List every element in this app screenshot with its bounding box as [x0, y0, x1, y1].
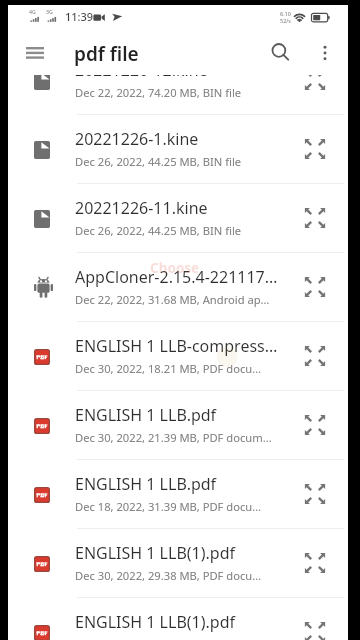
staticText: 20221226-12.kine: [75, 75, 208, 81]
staticText: AppCloner-2.15.4-221117…: [75, 266, 278, 288]
staticText: ENGLISH 1 LLB(1).pdf: [75, 611, 236, 633]
staticText: Choose: [150, 259, 200, 277]
staticText: Dec 30, 2022, 18.21 MB, PDF docu…: [75, 361, 262, 376]
button[interactable]: Expand: [287, 183, 342, 252]
staticText: pdf file: [74, 41, 139, 67]
button[interactable]: 20221226-11.kine: [8, 184, 348, 253]
button[interactable]: Expand: [287, 75, 342, 114]
button[interactable]: 20221226-1.kine: [8, 115, 348, 184]
button[interactable]: Search: [264, 37, 298, 69]
staticText: Dec 22, 2022, 74.20 MB, BIN file: [75, 85, 242, 100]
staticText: 3G: [46, 8, 53, 15]
staticText: 4G: [29, 8, 36, 15]
staticText: Dec 22, 2022, 31.68 MB, Android ap…: [75, 292, 270, 307]
button[interactable]: Expand: [287, 459, 342, 528]
button[interactable]: ENGLISH 1 LLB-compress…: [8, 322, 348, 391]
button[interactable]: Expand: [287, 252, 342, 321]
button[interactable]: Expand: [287, 390, 342, 459]
button[interactable]: Expand: [287, 321, 342, 390]
staticText: Dec 30, 2022, 29.38 MB, PDF docu…: [75, 568, 262, 583]
staticText: Dec 30, 2022, 21.39 MB, PDF docum…: [75, 430, 272, 445]
staticText: 6.10: [280, 10, 291, 17]
button[interactable]: ENGLISH 1 LLB.pdf: [8, 460, 348, 529]
button[interactable]: ENGLISH 1 LLB(1).pdf: [8, 598, 348, 640]
button[interactable]: Navigation menu: [16, 39, 53, 67]
staticText: ENGLISH 1 LLB(1).pdf: [75, 542, 236, 564]
staticText: Dec 26, 2022, 44.25 MB, BIN file: [75, 223, 242, 238]
staticText: ENGLISH 1 LLB-compress…: [75, 335, 278, 357]
staticText: 20221226-11.kine: [75, 197, 208, 219]
button[interactable]: 20221226-12.kine: [8, 75, 348, 115]
button[interactable]: ENGLISH 1 LLB.pdf: [8, 391, 348, 460]
staticText: 11:39: [65, 9, 94, 24]
staticText: ENGLISH 1 LLB.pdf: [75, 473, 217, 495]
button[interactable]: Expand: [287, 114, 342, 183]
button[interactable]: ENGLISH 1 LLB(1).pdf: [8, 529, 348, 598]
staticText: Dec 18, 2022, 31.39 MB, PDF docu…: [75, 499, 262, 514]
button[interactable]: More options: [311, 37, 339, 69]
staticText: Dec 26, 2022, 44.25 MB, BIN file: [75, 154, 242, 169]
button[interactable]: Expand: [287, 528, 342, 597]
button[interactable]: AppCloner-2.15.4-221117…: [8, 253, 348, 322]
staticText: ENGLISH 1 LLB.pdf: [75, 404, 217, 426]
button[interactable]: Expand: [287, 597, 342, 640]
staticText: 20221226-1.kine: [75, 128, 199, 150]
staticText: 52/s: [280, 17, 291, 24]
